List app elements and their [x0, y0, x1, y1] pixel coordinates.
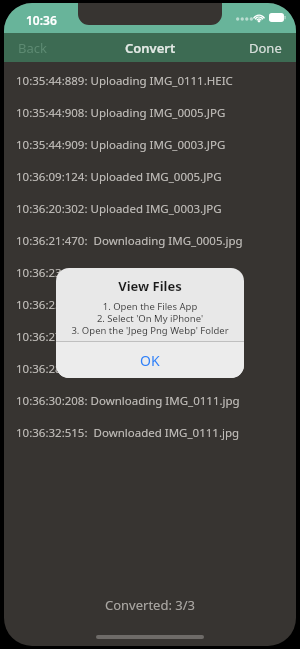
staticText: 10:36:32:515: Downloaded IMG_0111.jpg: [16, 425, 240, 441]
staticText: 1. Open the Files App 2. Select 'On My i…: [71, 300, 229, 337]
button[interactable]: 10:36:25:112: Downloaded IMG_0005.jpg: [4, 289, 296, 321]
button[interactable]: Back: [12, 35, 53, 61]
button[interactable]: 10:36:23:945: Downloading IMG_0003.jpg: [4, 257, 296, 289]
staticText: 10:36:09:124: Uploaded IMG_0005.JPG: [16, 169, 222, 185]
button[interactable]: 10:35:44:909: Uploading IMG_0003.JPG: [4, 129, 296, 161]
button[interactable]: 10:36:32:515: Downloaded IMG_0111.jpg: [4, 417, 296, 449]
staticText: 10:35:44:889: Uploading IMG_0111.HEIC: [16, 73, 233, 89]
button[interactable]: 10:36:27:330: Uploaded IMG_0111.HEIC: [4, 321, 296, 353]
staticText: 10:36:27:330: Uploaded IMG_0111.HEIC: [16, 329, 230, 345]
staticText: 10:35:44:908: Uploading IMG_0005.JPG: [16, 105, 226, 121]
button[interactable]: 10:36:28:741: Downloaded IMG_0003.jpg: [4, 353, 296, 385]
button[interactable]: 10:36:21:470: Downloading IMG_0005.jpg: [4, 225, 296, 257]
staticText: 10:36:23:945: Downloading IMG_0003.jpg: [16, 265, 240, 281]
button[interactable]: 10:35:44:889: Uploading IMG_0111.HEIC: [4, 65, 296, 97]
button[interactable]: OK: [56, 342, 244, 378]
staticText: Back: [18, 39, 47, 57]
staticText: 10:36: [26, 12, 57, 28]
button[interactable]: 10:35:44:908: Uploading IMG_0005.JPG: [4, 97, 296, 129]
staticText: Convert: [125, 39, 176, 57]
button[interactable]: Done: [243, 35, 288, 61]
staticText: Converted: 3/3: [105, 596, 196, 614]
staticText: Done: [249, 39, 282, 57]
staticText: 10:36:20:302: Uploaded IMG_0003.JPG: [16, 201, 222, 217]
staticText: OK: [140, 351, 160, 370]
staticText: 10:36:21:470: Downloading IMG_0005.jpg: [16, 233, 243, 249]
button[interactable]: 10:36:20:302: Uploaded IMG_0003.JPG: [4, 193, 296, 225]
staticText: 10:36:30:208: Downloading IMG_0111.jpg: [16, 393, 240, 409]
staticText: 10:35:44:909: Uploading IMG_0003.JPG: [16, 137, 226, 153]
button[interactable]: 10:36:09:124: Uploaded IMG_0005.JPG: [4, 161, 296, 193]
staticText: 10:36:28:741: Downloaded IMG_0003.jpg: [16, 361, 237, 377]
button[interactable]: 10:36:30:208: Downloading IMG_0111.jpg: [4, 385, 296, 417]
staticText: 10:36:25:112: Downloaded IMG_0005.jpg: [16, 297, 237, 313]
staticText: View Files: [118, 277, 182, 295]
